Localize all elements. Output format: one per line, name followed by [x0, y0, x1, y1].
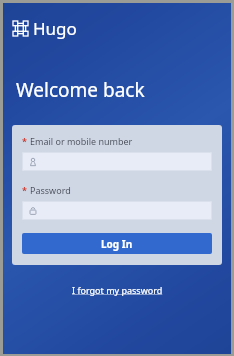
button[interactable]: Email or mobile number: [22, 152, 212, 171]
button[interactable]: Hugo home: [13, 17, 77, 40]
staticText: *: [22, 184, 27, 196]
staticText: Password: [30, 184, 71, 196]
button[interactable]: I forgot my password: [66, 280, 169, 300]
staticText: Log In: [101, 237, 133, 251]
staticText: Email or mobile number: [30, 135, 133, 147]
staticText: Hugo: [33, 17, 77, 40]
button[interactable]: Password: [22, 201, 212, 220]
staticText: Welcome back: [16, 77, 145, 103]
staticText: *: [22, 135, 27, 147]
button[interactable]: Log In: [22, 233, 212, 254]
